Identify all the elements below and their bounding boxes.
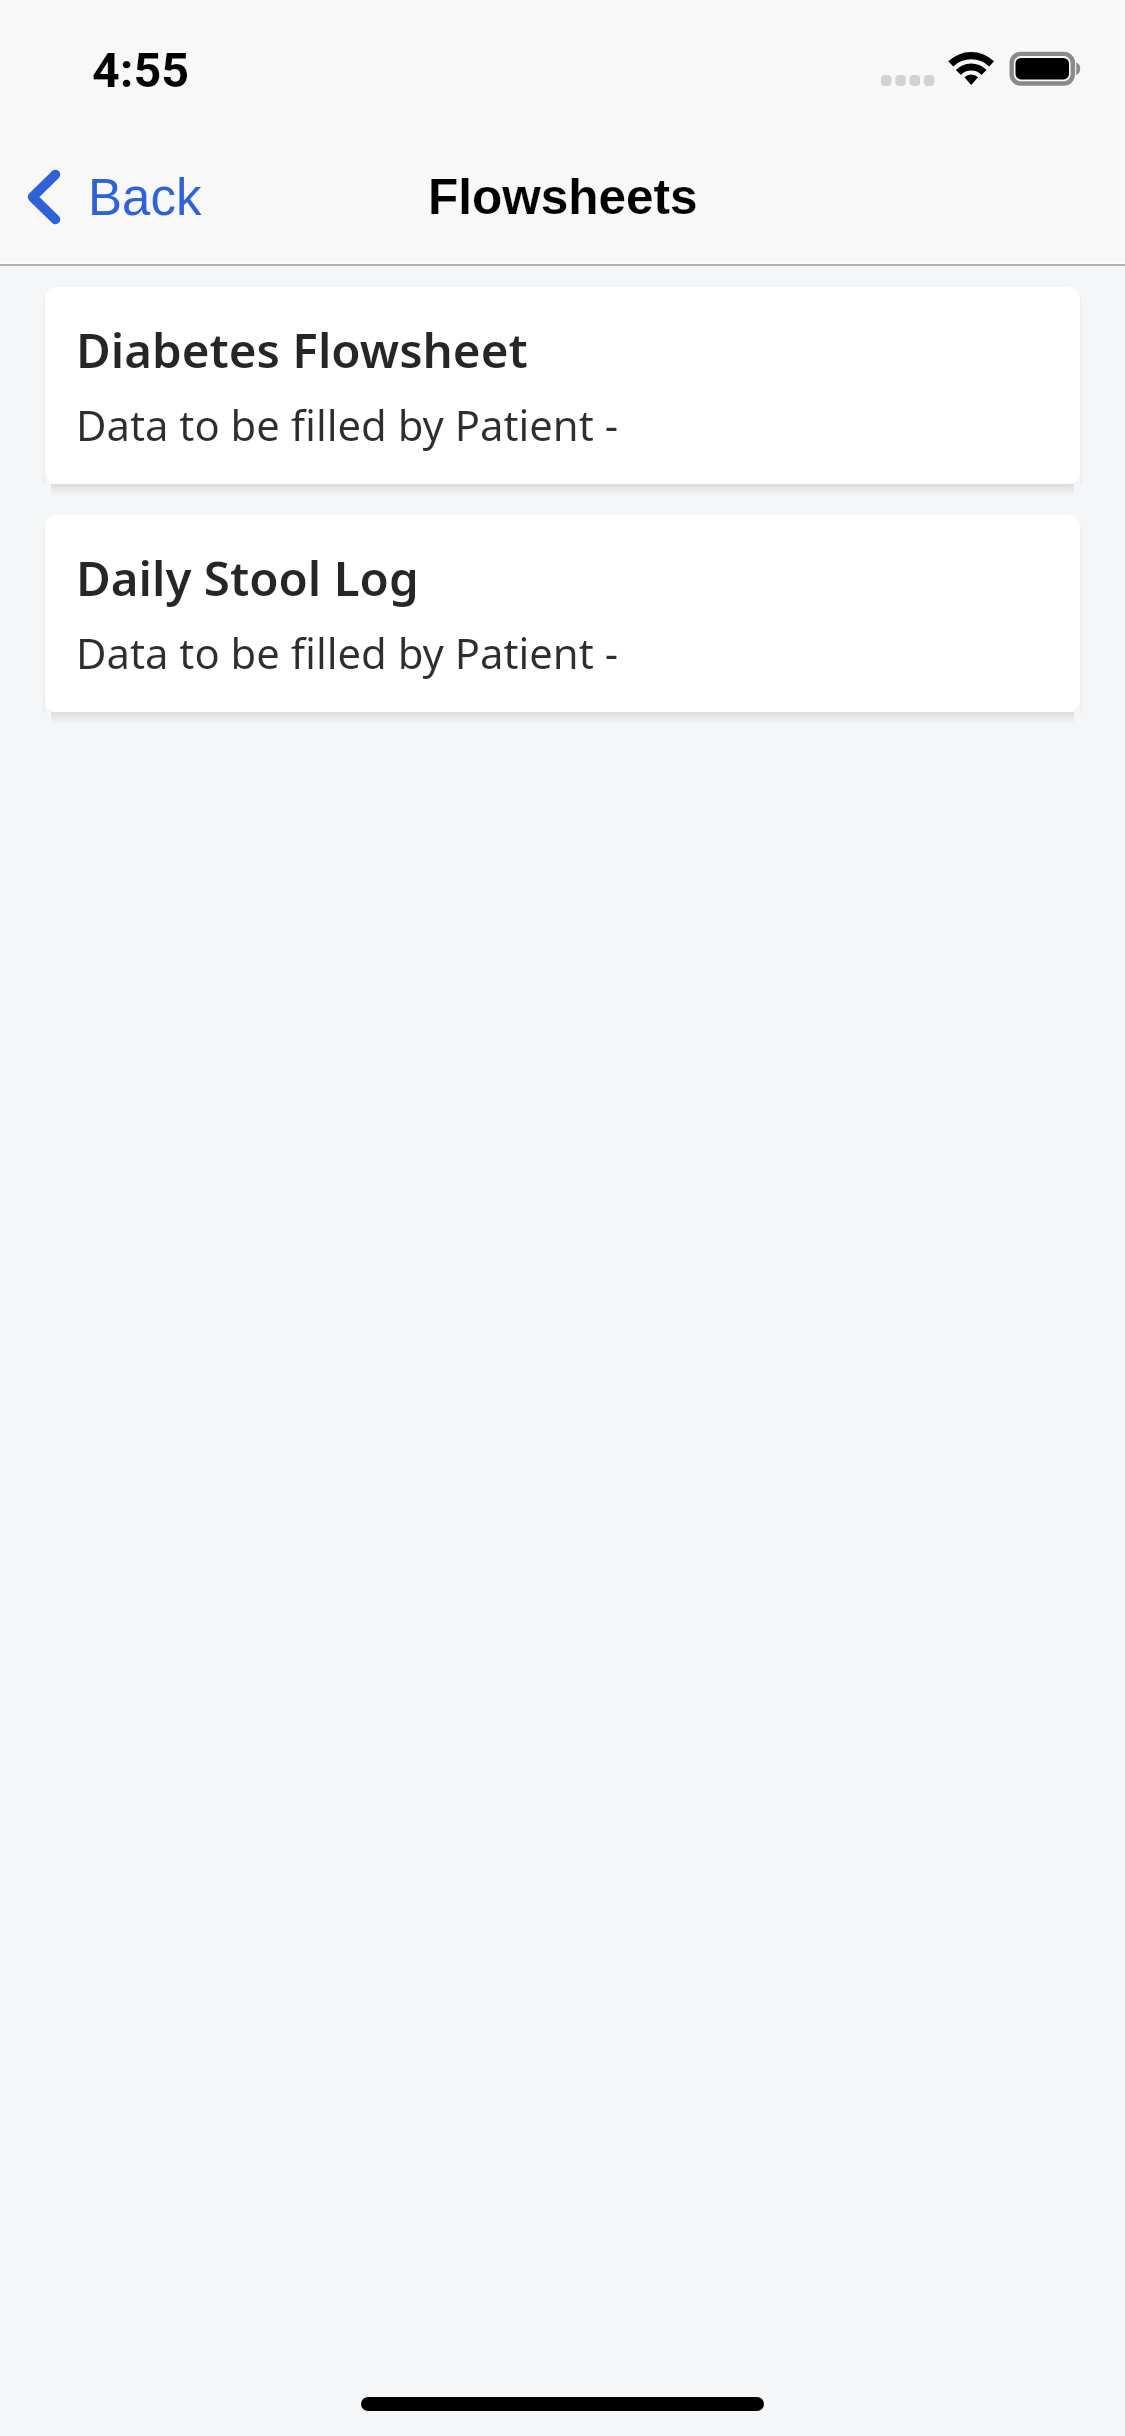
- staticText: Data to be filled by Patient -: [76, 396, 619, 453]
- button[interactable]: Daily Stool Log: [45, 515, 1080, 712]
- staticText: Daily Stool Log: [76, 545, 419, 610]
- staticText: Diabetes Flowsheet: [76, 317, 528, 382]
- staticText: Flowsheets: [428, 169, 698, 224]
- other: Wi-Fi: [938, 45, 1004, 93]
- staticText: Data to be filled by Patient -: [76, 624, 619, 681]
- other: Cellular signal: [881, 75, 934, 86]
- staticText: Back: [88, 169, 202, 226]
- button[interactable]: Diabetes Flowsheet: [45, 287, 1080, 484]
- staticText: 4:55: [92, 42, 190, 99]
- button[interactable]: Back: [0, 132, 226, 266]
- other: Battery full: [1007, 49, 1085, 89]
